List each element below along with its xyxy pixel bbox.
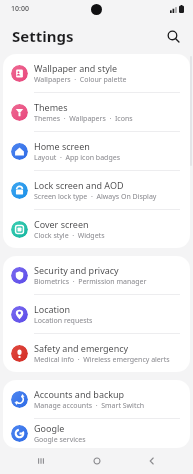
button[interactable]: Accounts and backup xyxy=(3,380,190,418)
button[interactable]: Home xyxy=(82,448,112,474)
staticText: Lock screen and AOD xyxy=(34,179,124,191)
button[interactable]: Recent apps xyxy=(26,448,56,474)
staticText: Settings xyxy=(12,26,74,46)
button[interactable]: Back xyxy=(137,448,167,474)
staticText: Safety and emergency xyxy=(34,342,129,354)
button[interactable]: Safety and emergency xyxy=(3,334,190,372)
staticText: Manage accounts · Smart Switch xyxy=(34,401,145,411)
staticText: Themes xyxy=(34,101,68,113)
button[interactable]: Themes xyxy=(3,93,190,131)
staticText: Screen lock type · Always On Display xyxy=(34,192,157,202)
button[interactable]: Location xyxy=(3,295,190,333)
staticText: Biometrics · Permission manager xyxy=(34,277,147,287)
button[interactable]: Wallpaper and style xyxy=(3,54,190,92)
staticText: Layout · App icon badges xyxy=(34,153,121,163)
staticText: Wallpaper and style xyxy=(34,62,118,74)
button[interactable]: Google xyxy=(3,419,190,448)
staticText: Wallpapers · Colour palette xyxy=(34,75,127,85)
button[interactable]: Lock screen and AOD xyxy=(3,171,190,209)
button[interactable]: Security and privacy xyxy=(3,256,190,294)
staticText: Medical info · Wireless emergency alerts xyxy=(34,355,170,365)
staticText: Clock style · Widgets xyxy=(34,231,105,241)
staticText: Google xyxy=(34,422,65,434)
staticText: Security and privacy xyxy=(34,264,119,276)
button[interactable]: Home screen xyxy=(3,132,190,170)
staticText: Themes · Wallpapers · Icons xyxy=(34,114,133,124)
staticText: 10:00 xyxy=(11,4,29,14)
staticText: Location requests xyxy=(34,316,93,326)
button[interactable]: Cover screen xyxy=(3,210,190,248)
staticText: Home screen xyxy=(34,140,90,152)
staticText: Cover screen xyxy=(34,218,89,230)
staticText: Google services xyxy=(34,435,86,445)
staticText: Location xyxy=(34,303,71,315)
button[interactable]: Search xyxy=(161,24,185,48)
staticText: Accounts and backup xyxy=(34,388,125,400)
